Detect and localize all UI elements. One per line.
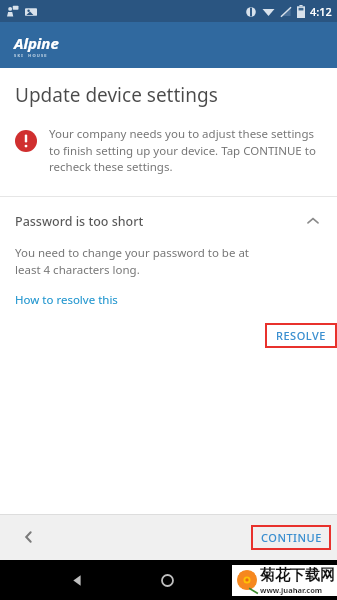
staticText: 4:12: [310, 4, 332, 19]
staticText: How to resolve this: [15, 292, 118, 308]
button[interactable]: How to resolve this: [15, 292, 118, 308]
button[interactable]: CONTINUE: [251, 525, 331, 550]
staticText: 菊花下载网: [260, 566, 335, 585]
staticText: www.juahar.com: [260, 585, 323, 595]
staticText: Alpine: [14, 33, 59, 53]
staticText: RESOLVE: [276, 328, 326, 343]
staticText: SKI HOUSE: [14, 53, 48, 58]
staticText: Update device settings: [15, 82, 218, 108]
button[interactable]: Password is too short: [0, 197, 337, 237]
staticText: Password is too short: [15, 213, 303, 230]
other: Collapse: [303, 211, 323, 231]
button[interactable]: RESOLVE: [265, 323, 337, 348]
staticText: CONTINUE: [261, 530, 322, 545]
staticText: You need to change your password to be a…: [15, 245, 265, 277]
button[interactable]: Back: [12, 520, 46, 554]
button[interactable]: Back: [62, 565, 92, 595]
staticText: Your company needs you to adjust these s…: [49, 126, 317, 174]
button[interactable]: Home: [152, 565, 182, 595]
